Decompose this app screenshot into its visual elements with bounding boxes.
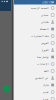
button[interactable]: طلباتي [14, 18, 56, 25]
staticText: ZEID ISSA [42, 0, 54, 4]
button[interactable]: خروج [14, 95, 56, 100]
staticText: الفروع [41, 48, 48, 51]
staticText: خروج [42, 97, 48, 100]
button[interactable]: سلة المشتريات [14, 32, 56, 39]
button[interactable]: الإعدادات [14, 60, 56, 67]
button[interactable]: اللغة [14, 67, 56, 74]
button[interactable]: الفروع [14, 46, 56, 53]
staticText: اللغة [43, 69, 48, 72]
staticText: تقييم [42, 90, 48, 93]
button[interactable]: تواصل معنا [14, 53, 56, 60]
staticText: عن التطبيق [34, 76, 48, 79]
button[interactable]: المفضلة [14, 25, 56, 32]
staticText: سلة المشتريات [30, 34, 48, 37]
staticText: العروض [40, 41, 48, 44]
button[interactable]: الصفحة الرئيسية [14, 4, 56, 11]
staticText: تواصل معنا [36, 55, 48, 58]
button[interactable]: عن التطبيق [14, 74, 56, 81]
staticText: طلباتي [40, 20, 48, 23]
button[interactable]: تقييم [14, 88, 56, 95]
staticText: المفضلة [39, 27, 48, 30]
staticText: الصفحة الرئيسية [30, 6, 48, 9]
staticText: شارك [42, 83, 48, 86]
button[interactable]: حسابي [14, 11, 56, 18]
staticText: الإعدادات [36, 62, 48, 65]
button[interactable]: شارك [14, 81, 56, 88]
staticText: حسابي [40, 13, 48, 16]
button[interactable]: العروض [14, 39, 56, 46]
